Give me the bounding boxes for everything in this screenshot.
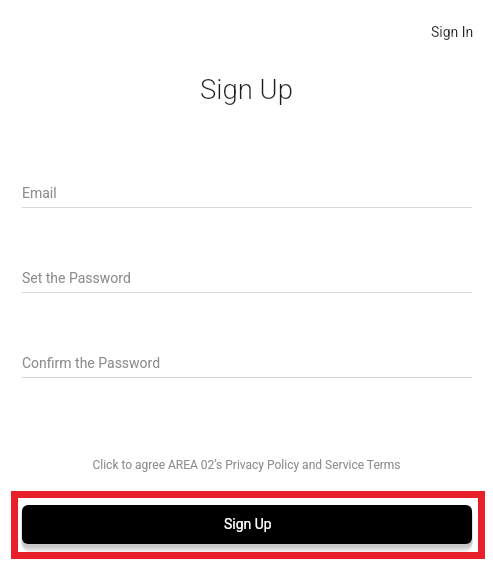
staticText: Sign In <box>431 24 474 40</box>
staticText: Sign Up <box>200 73 293 105</box>
staticText: Click to agree AREA 02’s Privacy Policy … <box>92 458 401 472</box>
staticText: Set the Password <box>22 270 131 286</box>
button[interactable]: Email <box>22 173 472 211</box>
button[interactable]: Confirm the Password <box>22 343 472 381</box>
button[interactable]: Sign Up <box>22 505 472 544</box>
staticText: Email <box>22 185 57 201</box>
button[interactable]: Set the Password <box>22 258 472 296</box>
staticText: Sign Up <box>224 516 272 532</box>
button[interactable]: Click to agree AREA 02’s Privacy Policy … <box>86 452 407 478</box>
button[interactable]: Sign In <box>423 16 482 48</box>
staticText: Confirm the Password <box>22 355 161 371</box>
